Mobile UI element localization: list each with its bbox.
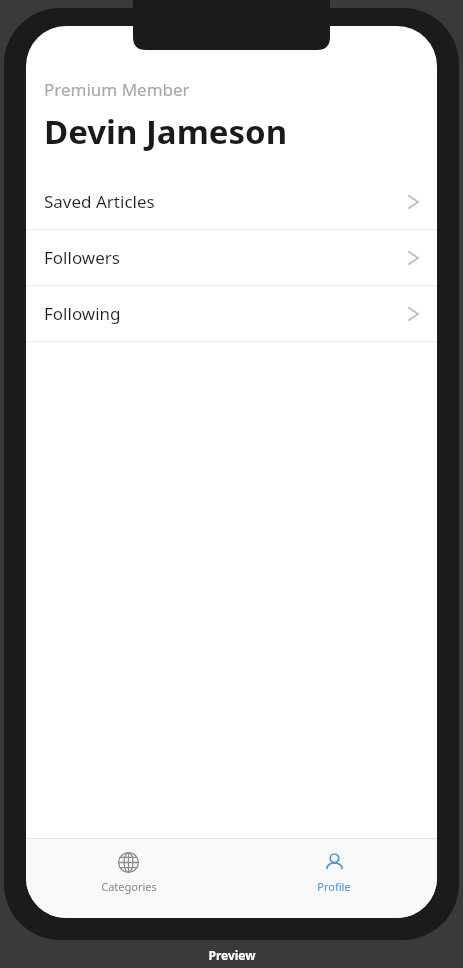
staticText: Preview	[208, 947, 256, 963]
staticText: Devin Jameson	[44, 109, 288, 154]
staticText: Premium Member	[44, 78, 190, 101]
button[interactable]: Categories	[26, 838, 231, 900]
staticText: Profile	[317, 879, 351, 894]
staticText: Following	[44, 302, 408, 325]
button[interactable]: Profile	[231, 838, 437, 900]
staticText: Saved Articles	[44, 190, 408, 213]
button[interactable]: Saved Articles	[26, 174, 437, 229]
button[interactable]: Followers	[26, 230, 437, 285]
button[interactable]: Following	[26, 286, 437, 341]
staticText: Categories	[101, 879, 157, 894]
staticText: Followers	[44, 246, 408, 269]
